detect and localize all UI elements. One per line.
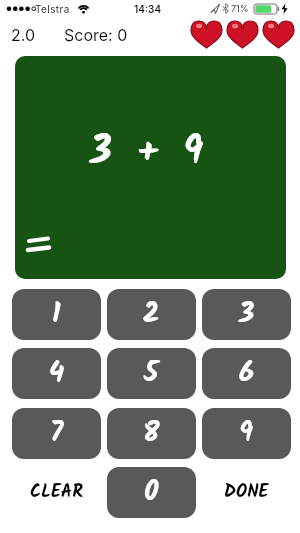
button[interactable]: 2 — [107, 289, 196, 340]
button[interactable]: CLEAR — [12, 467, 101, 518]
staticText: 4 — [49, 351, 65, 396]
staticText: 2 — [143, 292, 160, 337]
staticText: + — [137, 126, 158, 180]
staticText: CLEAR — [30, 478, 84, 507]
button[interactable]: 8 — [107, 408, 196, 459]
staticText: Score: 0 — [64, 25, 128, 44]
staticText: 9 — [183, 120, 204, 184]
staticText: 9 — [239, 411, 254, 456]
staticText: 7 — [50, 411, 64, 456]
button[interactable]: 4 — [12, 348, 101, 399]
button[interactable]: 5 — [107, 348, 196, 399]
staticText: 3 — [239, 292, 255, 337]
staticText: 3 — [90, 120, 112, 184]
button[interactable]: 7 — [12, 408, 101, 459]
staticText: Telstra — [35, 3, 70, 15]
button[interactable]: 9 — [202, 408, 291, 459]
button[interactable]: 1 — [12, 289, 101, 340]
staticText: DONE — [224, 478, 269, 507]
staticText: 1 — [52, 292, 61, 337]
button[interactable]: 6 — [202, 348, 291, 399]
button[interactable]: DONE — [202, 467, 291, 518]
staticText: 14:34 — [134, 3, 162, 15]
staticText: 71% — [231, 3, 249, 14]
staticText: 0 — [144, 470, 159, 515]
button[interactable]: 3 — [202, 289, 291, 340]
staticText: 6 — [239, 351, 255, 396]
staticText: 2.0 — [11, 25, 36, 44]
staticText: 5 — [144, 351, 159, 396]
button[interactable]: 0 — [107, 467, 196, 518]
staticText: 8 — [143, 411, 160, 456]
